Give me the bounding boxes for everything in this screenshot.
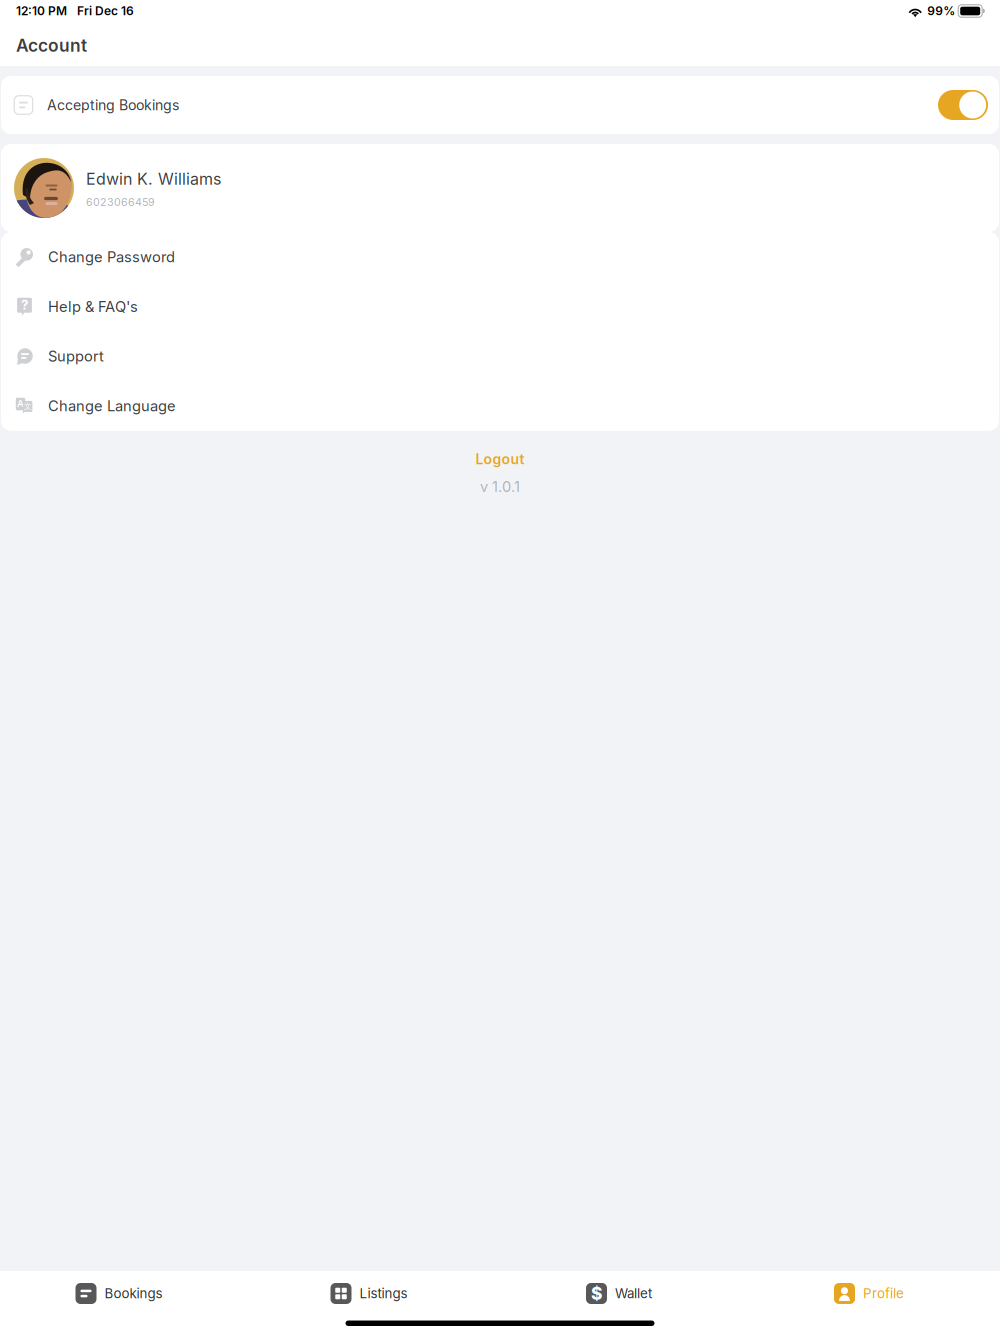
button[interactable]: Accepting Bookings: [1, 76, 999, 134]
staticText: Edwin K. Williams: [86, 169, 221, 189]
button[interactable]: ?: [1, 282, 999, 331]
staticText: Wallet: [615, 1285, 652, 1301]
staticText: 12:10 PM: [16, 4, 67, 18]
button[interactable]: Profile: [744, 1283, 994, 1304]
staticText: Account: [16, 35, 87, 56]
button[interactable]: Listings: [244, 1283, 494, 1304]
button[interactable]: Logout: [465, 447, 534, 472]
button[interactable]: Change Password: [1, 232, 999, 282]
staticText: 6023066459: [86, 196, 155, 209]
staticText: Support: [48, 347, 104, 365]
staticText: v 1.0.1: [480, 478, 520, 495]
staticText: ?: [21, 297, 28, 313]
button[interactable]: A: [1, 381, 999, 431]
button[interactable]: $: [494, 1283, 744, 1304]
staticText: 99%: [927, 4, 955, 18]
staticText: 文: [24, 401, 32, 411]
staticText: Fri Dec 16: [77, 4, 134, 18]
staticText: Listings: [359, 1285, 407, 1301]
button[interactable]: Support: [1, 331, 999, 381]
staticText: Accepting Bookings: [47, 96, 179, 113]
button[interactable]: Edwin K. Williams: [1, 144, 999, 232]
staticText: Change Language: [48, 397, 176, 415]
staticText: Profile: [863, 1285, 904, 1301]
staticText: Help & FAQ's: [48, 298, 138, 315]
button[interactable]: Bookings: [0, 1283, 244, 1304]
staticText: Change Password: [48, 248, 175, 266]
staticText: Logout: [475, 451, 524, 468]
staticText: A: [17, 398, 24, 409]
staticText: Bookings: [104, 1285, 162, 1301]
staticText: $: [591, 1283, 602, 1304]
